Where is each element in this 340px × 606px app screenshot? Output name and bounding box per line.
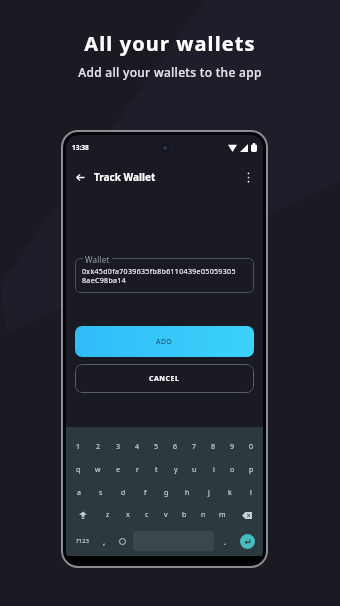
- button[interactable]: g: [156, 481, 177, 504]
- staticText: u: [192, 465, 197, 475]
- staticText: f: [144, 488, 147, 498]
- button[interactable]: h: [177, 481, 198, 504]
- staticText: ,: [103, 536, 106, 547]
- staticText: d: [121, 488, 126, 498]
- button[interactable]: d: [112, 481, 134, 504]
- staticText: 3: [116, 442, 121, 452]
- button[interactable]: Enter: [240, 534, 255, 549]
- staticText: 0xk45d0fa7039635fb8b6110439e05059305 8ae…: [82, 267, 236, 285]
- button[interactable]: ?123: [69, 528, 96, 554]
- button[interactable]: Back: [72, 169, 89, 186]
- staticText: s: [99, 488, 103, 498]
- button[interactable]: e: [108, 458, 128, 481]
- button[interactable]: z: [98, 504, 118, 526]
- staticText: 1: [76, 442, 81, 452]
- button[interactable]: n: [194, 504, 213, 526]
- button[interactable]: ,: [96, 528, 113, 554]
- button[interactable]: 4: [128, 435, 147, 458]
- button[interactable]: ADD: [75, 326, 254, 357]
- staticText: a: [77, 488, 81, 498]
- staticText: z: [106, 510, 110, 520]
- staticText: 7: [192, 442, 197, 452]
- button[interactable]: 0: [242, 435, 261, 458]
- button[interactable]: 3: [108, 435, 128, 458]
- button[interactable]: 9: [223, 435, 242, 458]
- button[interactable]: s: [90, 481, 112, 504]
- button[interactable]: y: [166, 458, 185, 481]
- staticText: 5: [154, 442, 159, 452]
- staticText: t: [155, 465, 158, 475]
- button[interactable]: 7: [185, 435, 204, 458]
- staticText: 2: [96, 442, 101, 452]
- button[interactable]: Backspace: [232, 504, 261, 526]
- staticText: x: [126, 510, 130, 520]
- staticText: CANCEL: [149, 374, 180, 384]
- button[interactable]: More options: [240, 169, 257, 186]
- staticText: h: [185, 488, 190, 498]
- staticText: r: [136, 465, 139, 475]
- button[interactable]: 0xk45d0fa7039635fb8b6110439e05059305 8ae…: [75, 258, 254, 293]
- button[interactable]: p: [242, 458, 261, 481]
- staticText: Track Wallet: [94, 170, 156, 184]
- staticText: n: [201, 510, 206, 520]
- staticText: 0: [249, 442, 254, 452]
- button[interactable]: r: [128, 458, 147, 481]
- button[interactable]: 1: [68, 435, 88, 458]
- button[interactable]: k: [219, 481, 240, 504]
- staticText: 8: [211, 442, 216, 452]
- staticText: k: [228, 488, 232, 498]
- staticText: .: [224, 536, 227, 547]
- staticText: l: [250, 488, 252, 498]
- button[interactable]: x: [118, 504, 137, 526]
- button[interactable]: u: [185, 458, 204, 481]
- button[interactable]: c: [137, 504, 156, 526]
- button[interactable]: j: [198, 481, 219, 504]
- staticText: 6: [173, 442, 178, 452]
- button[interactable]: Shift: [68, 504, 98, 526]
- staticText: p: [249, 465, 254, 475]
- button[interactable]: 5: [147, 435, 166, 458]
- button[interactable]: i: [204, 458, 223, 481]
- button[interactable]: l: [240, 481, 261, 504]
- button[interactable]: 2: [88, 435, 108, 458]
- button[interactable]: t: [147, 458, 166, 481]
- staticText: 13:38: [72, 143, 89, 152]
- staticText: ?123: [76, 537, 89, 545]
- button[interactable]: Emoji: [113, 528, 131, 554]
- button[interactable]: CANCEL: [75, 364, 254, 393]
- button[interactable]: v: [156, 504, 175, 526]
- staticText: e: [116, 465, 120, 475]
- button[interactable]: w: [88, 458, 108, 481]
- staticText: w: [95, 465, 101, 475]
- button[interactable]: 6: [166, 435, 185, 458]
- button[interactable]: .: [216, 528, 234, 554]
- button[interactable]: m: [213, 504, 232, 526]
- staticText: 4: [135, 442, 140, 452]
- staticText: Add all your wallets to the app: [78, 64, 262, 80]
- staticText: o: [230, 465, 235, 475]
- staticText: m: [219, 510, 226, 520]
- staticText: All your wallets: [84, 30, 256, 57]
- staticText: v: [164, 510, 168, 520]
- staticText: q: [76, 465, 81, 475]
- button[interactable]: q: [68, 458, 88, 481]
- staticText: g: [164, 488, 169, 498]
- staticText: 9: [230, 442, 235, 452]
- button[interactable]: b: [175, 504, 194, 526]
- button[interactable]: o: [223, 458, 242, 481]
- staticText: Wallet: [85, 254, 110, 265]
- button[interactable]: a: [68, 481, 90, 504]
- staticText: y: [174, 465, 178, 475]
- staticText: ADD: [156, 337, 173, 347]
- staticText: i: [213, 465, 215, 475]
- button[interactable]: f: [134, 481, 156, 504]
- staticText: b: [182, 510, 187, 520]
- staticText: j: [208, 488, 210, 498]
- button[interactable]: 8: [204, 435, 223, 458]
- staticText: c: [145, 510, 149, 520]
